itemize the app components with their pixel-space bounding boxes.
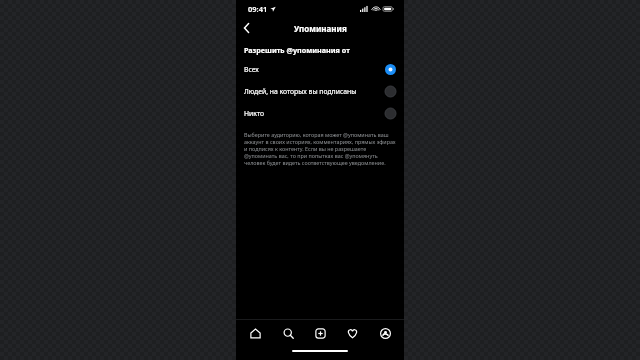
button[interactable]: Profile	[372, 320, 398, 346]
staticText: Всех	[244, 65, 385, 74]
button[interactable]: Людей, на которых вы подписаны	[236, 80, 404, 102]
button[interactable]: Search	[275, 320, 301, 346]
button[interactable]: Create	[307, 320, 333, 346]
staticText: Никто	[244, 109, 385, 118]
button[interactable]: Home	[242, 320, 268, 346]
button[interactable]: Всех	[236, 58, 404, 80]
button[interactable]: Никто	[236, 102, 404, 124]
staticText: Разрешить @упоминания от	[244, 45, 350, 55]
button[interactable]: Back	[236, 18, 256, 38]
staticText: Людей, на которых вы подписаны	[244, 87, 385, 96]
button[interactable]: Activity	[339, 320, 365, 346]
staticText: Выберите аудиторию, которая может @упоми…	[244, 131, 396, 166]
staticText: Упоминания	[294, 23, 347, 34]
staticText: 09:41	[248, 4, 268, 14]
